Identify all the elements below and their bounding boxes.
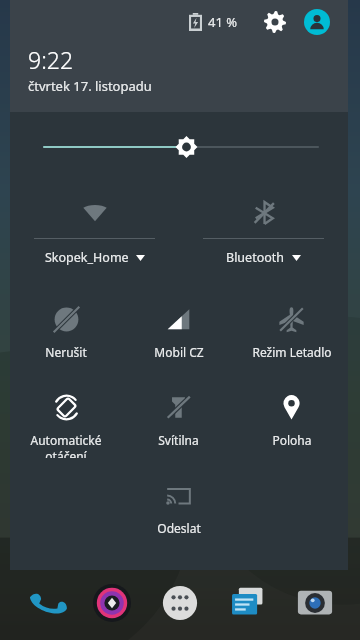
staticText: Skopek_Home: [45, 249, 129, 266]
button[interactable]: Camera gallery: [89, 580, 135, 626]
button[interactable]: Mobil CZ: [124, 298, 233, 370]
button[interactable]: Odeslat: [124, 474, 233, 546]
button[interactable]: Messages: [225, 580, 271, 626]
button[interactable]: Poloha: [237, 386, 346, 458]
staticText: Poloha: [272, 432, 312, 448]
staticText: Mobil CZ: [154, 344, 204, 360]
staticText: čtvrtek 17. listopadu: [28, 77, 152, 95]
staticText: Bluetooth: [226, 249, 285, 266]
staticText: Svítilna: [158, 432, 199, 448]
staticText: Odeslat: [157, 520, 201, 536]
button[interactable]: Režim Letadlo: [237, 298, 346, 370]
staticText: Automatické otáčení: [12, 432, 120, 458]
button[interactable]: Automatické otáčení: [12, 386, 120, 458]
button[interactable]: Bluetooth: [203, 190, 324, 276]
button[interactable]: All apps: [157, 580, 203, 626]
button[interactable]: Svítilna: [124, 386, 233, 458]
button[interactable]: Wi-Fi: [34, 190, 155, 276]
staticText: Režim Letadlo: [252, 344, 332, 360]
staticText: 41 %: [208, 13, 238, 31]
button[interactable]: Phone: [22, 580, 68, 626]
staticText: Nerušit: [45, 344, 87, 360]
button[interactable]: User profile: [300, 5, 334, 39]
staticText: 9:22: [28, 44, 74, 75]
button[interactable]: Nerušit: [12, 298, 120, 370]
button[interactable]: Settings: [258, 5, 292, 39]
button[interactable]: Camera: [292, 580, 338, 626]
button[interactable]: Brightness: [10, 124, 348, 170]
